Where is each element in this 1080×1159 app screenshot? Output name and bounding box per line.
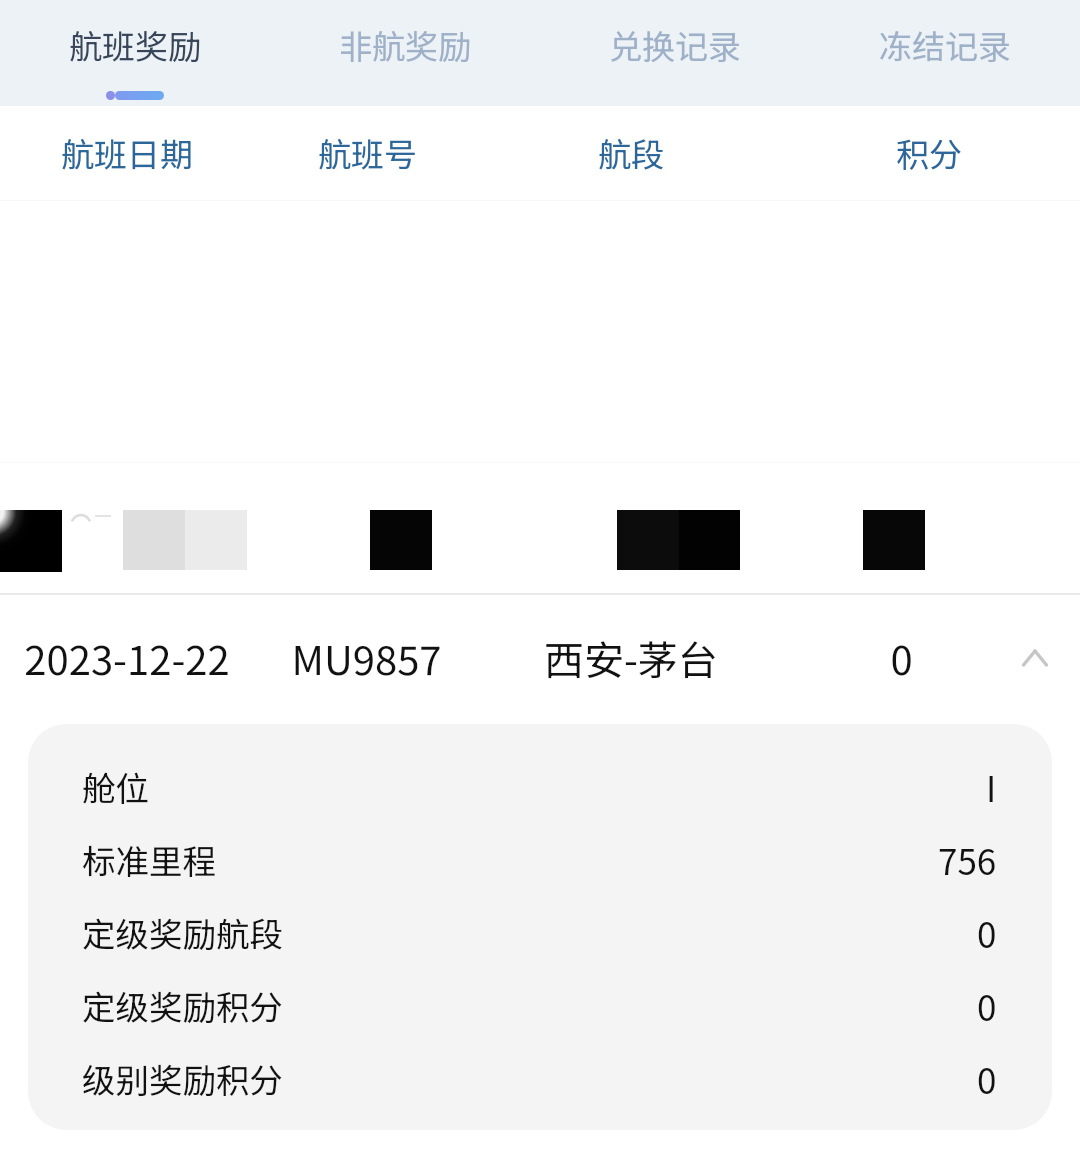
staticText: 定级奖励航段 <box>82 908 283 957</box>
staticText: 0 <box>977 907 997 958</box>
staticText: 756 <box>938 834 997 885</box>
staticText: MU9857 <box>291 629 442 687</box>
staticText: 冻结记录 <box>879 21 1011 69</box>
button[interactable]: 航班奖励 <box>0 0 270 106</box>
staticText: 0 <box>977 1053 997 1104</box>
staticText: 非航奖励 <box>339 21 471 69</box>
staticText: 西安-茅台 <box>544 629 718 687</box>
staticText: 航班日期 <box>61 129 193 177</box>
staticText: 舱位 <box>82 762 149 811</box>
staticText: 兑换记录 <box>609 21 741 69</box>
staticText: 航班号 <box>318 129 417 177</box>
button[interactable]: 2023-12-22 <box>0 594 1080 722</box>
staticText: 标准里程 <box>82 835 216 884</box>
staticText: I <box>986 761 997 812</box>
staticText: 航班奖励 <box>69 21 201 69</box>
staticText: 级别奖励积分 <box>82 1054 283 1103</box>
staticText: 积分 <box>896 129 962 177</box>
staticText: 0 <box>890 629 913 687</box>
button[interactable]: 兑换记录 <box>540 0 810 106</box>
button[interactable]: 非航奖励 <box>270 0 540 106</box>
staticText: 0 <box>977 980 997 1031</box>
staticText: 定级奖励积分 <box>82 981 283 1030</box>
button[interactable]: 冻结记录 <box>810 0 1080 106</box>
button[interactable]: Collapse details <box>1005 594 1065 722</box>
staticText: 航段 <box>598 129 664 177</box>
staticText: 2023-12-22 <box>24 629 230 687</box>
